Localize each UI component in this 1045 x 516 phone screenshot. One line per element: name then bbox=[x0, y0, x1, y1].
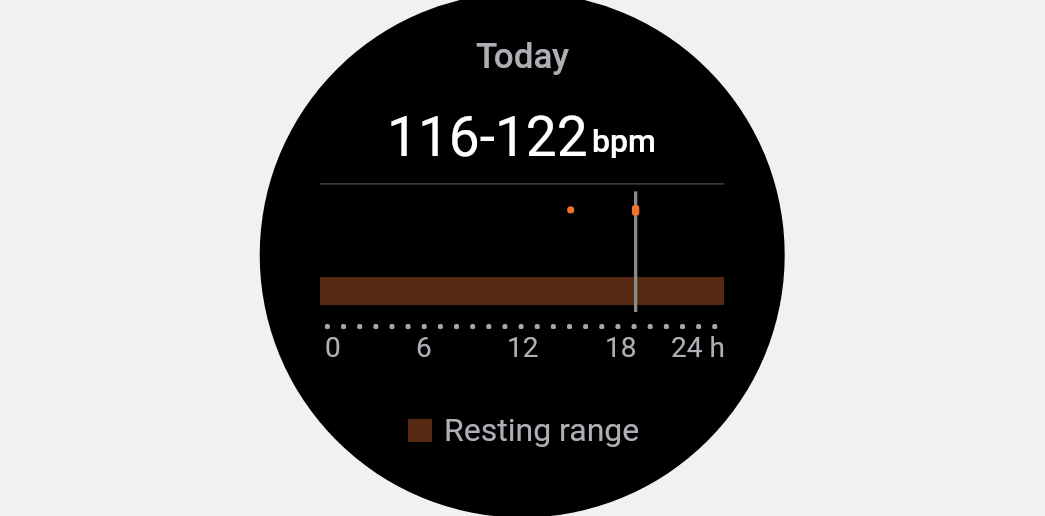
staticText: 18 bbox=[605, 331, 637, 364]
staticText: 12 bbox=[507, 331, 539, 364]
button[interactable]: Today bbox=[455, 30, 591, 80]
staticText: 24 h bbox=[671, 331, 725, 364]
staticText: Today bbox=[476, 36, 570, 77]
button[interactable]: 116-122 bbox=[380, 100, 665, 170]
staticText: bpm bbox=[592, 122, 656, 160]
staticText: 6 bbox=[416, 331, 432, 364]
staticText: 116-122 bbox=[387, 105, 588, 169]
staticText: Resting range bbox=[444, 411, 640, 449]
staticText: 0 bbox=[325, 331, 341, 364]
button[interactable]: Resting range bbox=[408, 411, 640, 449]
